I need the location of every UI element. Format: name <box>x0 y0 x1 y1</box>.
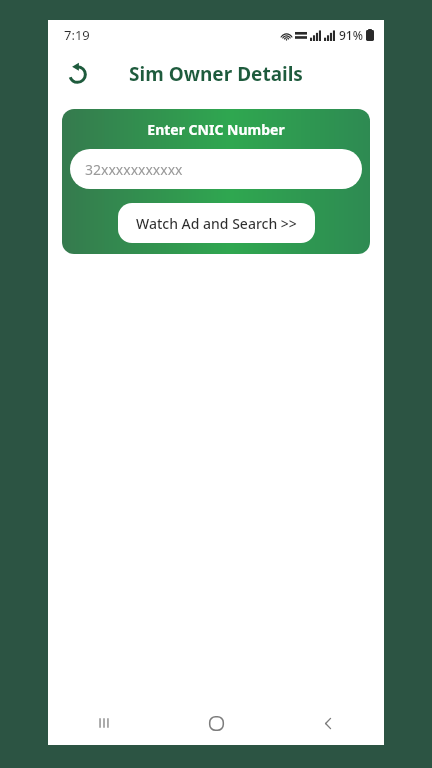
button[interactable]: Watch Ad and Search >> <box>118 203 315 243</box>
button[interactable]: Recent apps <box>48 701 160 745</box>
staticText: Watch Ad and Search >> <box>136 214 297 233</box>
staticText: 7:19 <box>64 26 90 44</box>
staticText: 91% <box>339 27 363 43</box>
staticText: 32xxxxxxxxxxx <box>85 160 183 179</box>
button[interactable]: 32xxxxxxxxxxx <box>70 149 362 189</box>
button[interactable]: Back <box>272 701 384 745</box>
staticText: Enter CNIC Number <box>147 120 285 139</box>
button[interactable]: Home <box>160 701 272 745</box>
button[interactable]: Back <box>56 54 96 94</box>
staticText: Sim Owner Details <box>129 61 303 87</box>
